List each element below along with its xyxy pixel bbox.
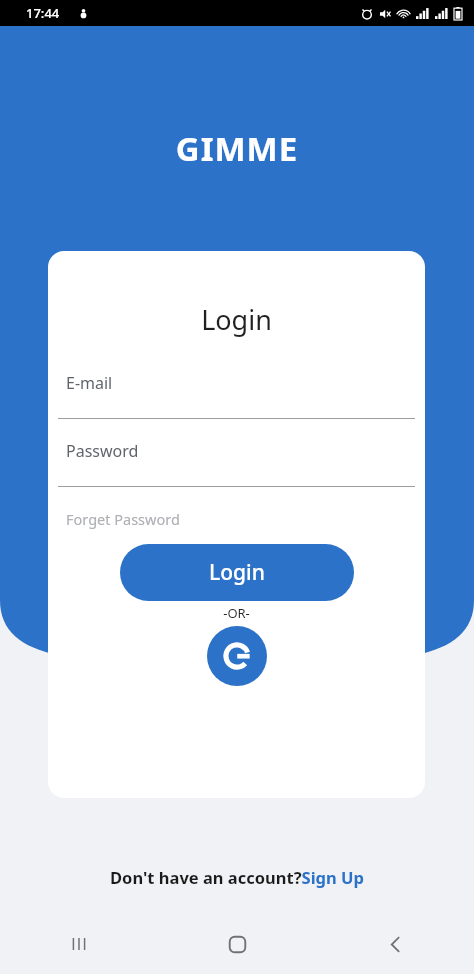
button[interactable]: Forget Password bbox=[66, 507, 180, 531]
staticText: 17:44 bbox=[26, 4, 60, 22]
staticText: GIMME bbox=[0, 126, 474, 171]
staticText: -OR- bbox=[48, 604, 425, 622]
staticText: Password bbox=[66, 440, 139, 462]
button[interactable]: Sign in with Google bbox=[207, 626, 267, 686]
button[interactable]: Login bbox=[120, 544, 354, 601]
button[interactable]: Recent apps bbox=[0, 914, 158, 974]
button[interactable]: Home bbox=[158, 914, 316, 974]
staticText: Login bbox=[48, 301, 425, 338]
staticText: E-mail bbox=[66, 372, 113, 394]
staticText: Login bbox=[209, 558, 265, 587]
staticText: Don't have an account?Sign Up bbox=[110, 866, 364, 888]
button[interactable]: Back bbox=[316, 914, 474, 974]
button[interactable]: Don't have an account?Sign Up bbox=[102, 862, 372, 892]
